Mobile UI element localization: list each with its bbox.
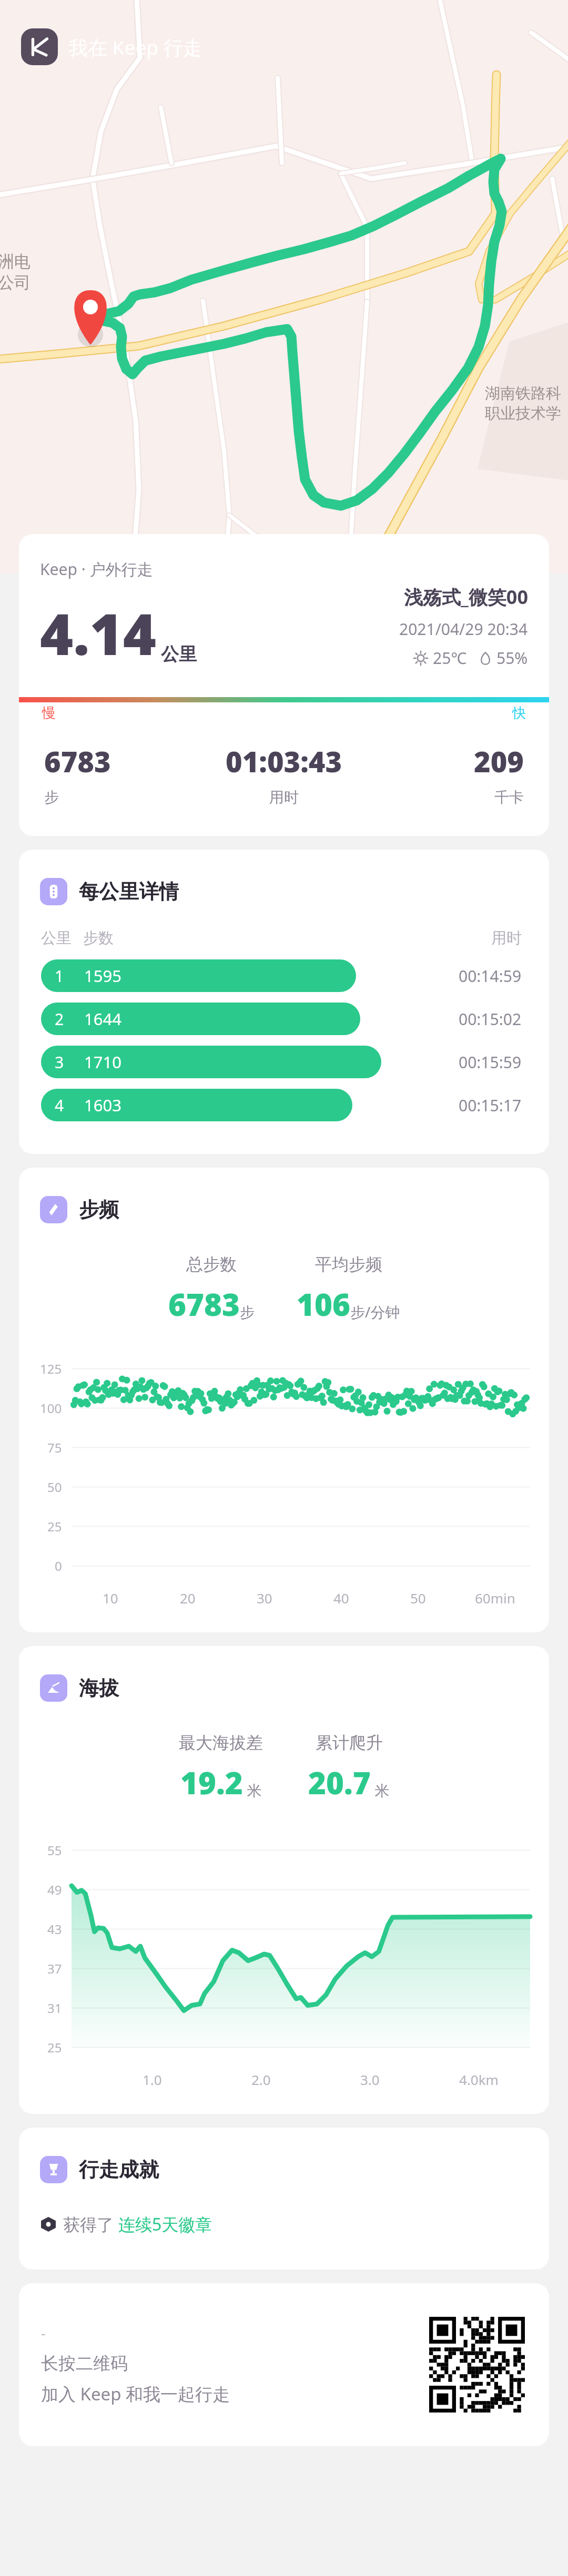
staticText: - xyxy=(41,2324,46,2342)
staticText: 慢 xyxy=(42,704,56,722)
staticText: 4.14 xyxy=(40,595,157,672)
staticText: 10 xyxy=(103,1589,118,1607)
staticText: 步 xyxy=(44,788,59,806)
staticText: 湖南铁路科 职业技术学 xyxy=(485,384,561,423)
staticText: 长按二维码 xyxy=(41,2353,128,2375)
staticText: 50 xyxy=(410,1589,426,1607)
staticText: 步/分钟 xyxy=(350,1302,400,1322)
staticText: 累计爬升 xyxy=(316,1732,383,1753)
staticText: 平均步频 xyxy=(315,1254,382,1275)
staticText: 2 xyxy=(55,1008,64,1030)
staticText: 1.0 xyxy=(143,2070,162,2089)
staticText: 55% xyxy=(496,647,528,669)
staticText: 我在 Keep 行走 xyxy=(68,34,202,60)
staticText: 25℃ xyxy=(433,647,467,669)
staticText: 20 xyxy=(180,1589,196,1607)
staticText: 25 xyxy=(47,2039,62,2056)
button[interactable]: 4 xyxy=(41,1089,522,1121)
button[interactable]: Keep xyxy=(21,28,58,65)
staticText: 20.7 xyxy=(308,1762,371,1803)
staticText: 4.0km xyxy=(459,2070,499,2089)
button[interactable]: 3 xyxy=(41,1046,522,1078)
button[interactable]: 步频 xyxy=(40,1196,119,1223)
staticText: 米 xyxy=(371,1780,390,1800)
staticText: 55 xyxy=(47,1842,62,1859)
staticText: 00:15:02 xyxy=(459,1008,522,1030)
button[interactable]: 行走成就 xyxy=(40,2156,159,2183)
staticText: 洲电 公司 xyxy=(0,251,31,293)
button[interactable]: Keep · 户外行走 xyxy=(19,534,549,836)
staticText: 00:15:59 xyxy=(459,1051,522,1073)
staticText: 步数 xyxy=(83,928,114,948)
staticText: 0 xyxy=(55,1557,62,1575)
staticText: 每公里详情 xyxy=(79,879,179,904)
staticText: 19.2 xyxy=(180,1762,243,1803)
staticText: 用时 xyxy=(269,788,299,806)
button[interactable]: 2 xyxy=(41,1003,522,1035)
button[interactable]: 获得了 xyxy=(41,2213,549,2236)
staticText: 31 xyxy=(47,1999,62,2017)
staticText: 60min xyxy=(475,1589,515,1607)
staticText: 浅殇式_微笑00 xyxy=(404,584,528,610)
staticText: 1710 xyxy=(84,1051,121,1073)
staticText: 4 xyxy=(55,1095,64,1116)
staticText: 1644 xyxy=(84,1008,121,1030)
button[interactable]: 步频 xyxy=(19,1168,549,1632)
staticText: 公里 xyxy=(161,643,197,666)
staticText: 行走成就 xyxy=(79,2157,159,2182)
staticText: 2021/04/29 20:34 xyxy=(399,618,528,640)
staticText: 30 xyxy=(257,1589,272,1607)
staticText: 米 xyxy=(243,1780,262,1800)
button[interactable]: 行走成就 xyxy=(19,2128,549,2270)
staticText: Keep · 户外行走 xyxy=(40,558,153,580)
staticText: 106 xyxy=(297,1283,350,1325)
button[interactable]: QR code xyxy=(429,2317,525,2413)
staticText: 43 xyxy=(47,1920,62,1938)
staticText: 6783 xyxy=(44,742,111,781)
staticText: 获得了 xyxy=(63,2213,118,2236)
staticText: 49 xyxy=(47,1881,62,1898)
staticText: 步 xyxy=(240,1303,255,1322)
staticText: 1 xyxy=(55,965,64,987)
staticText: 100 xyxy=(40,1399,62,1417)
staticText: 快 xyxy=(512,704,526,722)
staticText: 50 xyxy=(47,1478,62,1496)
staticText: 1603 xyxy=(84,1094,121,1116)
staticText: 用时 xyxy=(491,928,522,948)
button[interactable]: 1 xyxy=(41,959,522,992)
button[interactable]: 每公里详情 xyxy=(40,878,179,905)
staticText: 加入 Keep 和我一起行走 xyxy=(41,2382,230,2406)
staticText: 千卡 xyxy=(494,788,524,806)
staticText: 3.0 xyxy=(360,2070,380,2089)
staticText: 40 xyxy=(333,1589,349,1607)
staticText: 37 xyxy=(47,1960,62,1977)
staticText: 公里 xyxy=(41,928,72,948)
staticText: 00:14:59 xyxy=(459,965,522,987)
staticText: 总步数 xyxy=(186,1254,237,1275)
staticText: 海拔 xyxy=(79,1675,119,1701)
staticText: 00:15:17 xyxy=(459,1095,522,1116)
button[interactable]: - xyxy=(19,2283,549,2446)
staticText: 1595 xyxy=(84,965,121,987)
button[interactable]: 海拔 xyxy=(40,1674,119,1702)
staticText: 6783 xyxy=(168,1283,240,1325)
button[interactable]: 每公里详情 xyxy=(19,850,549,1154)
button[interactable]: 海拔 xyxy=(19,1646,549,2114)
staticText: 2.0 xyxy=(251,2070,271,2089)
staticText: 步频 xyxy=(79,1197,119,1222)
staticText: 最大海拔差 xyxy=(179,1732,263,1753)
staticText: 01:03:43 xyxy=(226,742,342,781)
staticText: 25 xyxy=(47,1518,62,1535)
staticText: 209 xyxy=(474,742,524,781)
staticText: 3 xyxy=(55,1051,64,1073)
staticText: 125 xyxy=(40,1360,62,1377)
staticText: 连续5天徽章 xyxy=(118,2213,212,2236)
staticText: 75 xyxy=(47,1439,62,1456)
